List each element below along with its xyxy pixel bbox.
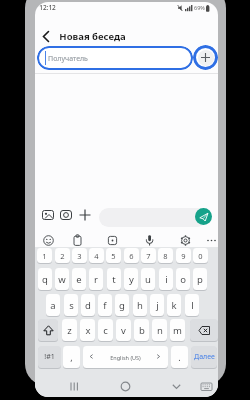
button[interactable]: w <box>55 268 69 290</box>
button[interactable]: m <box>170 319 185 341</box>
button[interactable]: , <box>63 346 80 368</box>
staticText: d <box>85 299 91 312</box>
staticText: a <box>50 299 56 312</box>
button[interactable] <box>205 234 218 247</box>
staticText: 1 <box>42 251 47 261</box>
staticText: z <box>67 324 72 337</box>
staticText: 6 <box>129 251 134 261</box>
staticText: f <box>103 299 107 312</box>
staticText: !#1 <box>44 352 55 362</box>
staticText: 0 <box>198 251 203 261</box>
staticText: k <box>171 299 177 312</box>
button[interactable] <box>193 45 218 70</box>
button[interactable] <box>200 381 213 392</box>
button[interactable]: l <box>185 294 199 316</box>
staticText: x <box>85 324 91 337</box>
staticText: 2 <box>60 251 65 261</box>
staticText: j <box>156 299 159 312</box>
staticText: r <box>94 273 98 286</box>
button[interactable] <box>143 234 156 247</box>
button[interactable]: 6 <box>124 248 139 263</box>
button[interactable]: 0 <box>193 248 208 263</box>
button[interactable] <box>106 234 119 247</box>
staticText: e <box>76 273 82 286</box>
button[interactable]: b <box>134 319 149 341</box>
button[interactable] <box>179 234 192 247</box>
button[interactable]: x <box>80 319 95 341</box>
staticText: w <box>58 273 66 286</box>
staticText: 12:12 <box>39 3 56 12</box>
button[interactable]: n <box>152 319 167 341</box>
button[interactable]: y <box>124 268 138 290</box>
button[interactable] <box>119 380 132 393</box>
button[interactable] <box>71 234 84 247</box>
staticText: p <box>197 273 203 286</box>
button[interactable]: 5 <box>106 248 121 263</box>
button[interactable] <box>195 208 212 225</box>
staticText: y <box>129 273 134 286</box>
staticText: , <box>70 351 73 363</box>
button[interactable]: c <box>98 319 113 341</box>
button[interactable] <box>38 319 58 341</box>
staticText: u <box>145 273 151 286</box>
button[interactable] <box>99 208 207 227</box>
button[interactable] <box>41 208 55 222</box>
button[interactable]: o <box>176 268 190 290</box>
button[interactable]: j <box>150 294 164 316</box>
button[interactable]: . <box>171 346 188 368</box>
staticText: 3 <box>77 251 82 261</box>
button[interactable]: s <box>64 294 78 316</box>
staticText: h <box>137 299 143 312</box>
button[interactable] <box>190 319 218 341</box>
staticText: 5 <box>111 251 116 261</box>
staticText: 4 <box>94 251 99 261</box>
button[interactable]: k <box>167 294 181 316</box>
button[interactable]: g <box>115 294 129 316</box>
button[interactable]: t <box>107 268 121 290</box>
staticText: m <box>173 324 182 337</box>
button[interactable]: h <box>133 294 147 316</box>
button[interactable] <box>42 234 55 247</box>
button[interactable] <box>59 208 73 222</box>
button[interactable]: !#1 <box>38 346 61 368</box>
button[interactable]: p <box>193 268 207 290</box>
button[interactable]: e <box>72 268 86 290</box>
staticText: g <box>119 299 125 312</box>
staticText: . <box>178 351 181 363</box>
button[interactable]: f <box>98 294 112 316</box>
staticText: q <box>42 273 48 286</box>
button[interactable]: 2 <box>55 248 70 263</box>
button[interactable]: Получатель <box>37 46 193 70</box>
button[interactable]: 9 <box>176 248 191 263</box>
staticText: s <box>69 299 74 312</box>
button[interactable]: a <box>46 294 60 316</box>
staticText: Новая беседа <box>59 30 126 43</box>
staticText: 9 <box>181 251 186 261</box>
staticText: 8 <box>163 251 168 261</box>
button[interactable] <box>37 28 54 45</box>
staticText: b <box>139 324 145 337</box>
button[interactable]: English (US) <box>83 346 168 368</box>
button[interactable]: i <box>159 268 173 290</box>
button[interactable]: z <box>62 319 77 341</box>
button[interactable]: d <box>81 294 95 316</box>
staticText: 69% <box>194 4 205 11</box>
button[interactable]: 8 <box>158 248 173 263</box>
button[interactable] <box>78 208 92 222</box>
button[interactable] <box>170 380 183 393</box>
button[interactable]: 7 <box>141 248 156 263</box>
button[interactable]: Далее <box>191 346 217 368</box>
button[interactable]: 3 <box>72 248 87 263</box>
button[interactable]: 4 <box>89 248 104 263</box>
button[interactable]: u <box>141 268 155 290</box>
staticText: i <box>165 273 168 286</box>
staticText: Получатель <box>48 54 88 64</box>
staticText: v <box>121 324 126 337</box>
button[interactable]: r <box>89 268 103 290</box>
staticText: o <box>180 273 186 286</box>
button[interactable] <box>68 380 81 393</box>
button[interactable]: 1 <box>37 248 52 263</box>
button[interactable]: v <box>116 319 131 341</box>
button[interactable]: q <box>38 268 52 290</box>
staticText: 7 <box>146 251 151 261</box>
